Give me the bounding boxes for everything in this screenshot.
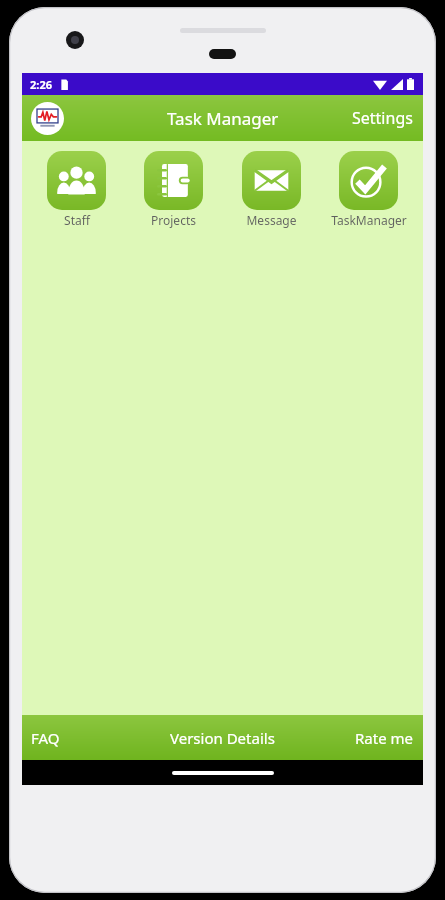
button[interactable]: TaskManager (321, 151, 416, 228)
button[interactable]: Projects (126, 151, 221, 228)
staticText: Message (246, 212, 297, 228)
button[interactable]: Message (224, 151, 319, 228)
staticText: Task Manager (167, 107, 279, 130)
staticText: Version Details (170, 728, 275, 748)
staticText: Settings (352, 107, 413, 129)
button[interactable]: FAQ (22, 715, 69, 760)
button[interactable]: Settings (342, 95, 423, 141)
staticText: 2:26 (30, 77, 52, 92)
button[interactable]: Version Details (158, 715, 287, 760)
button[interactable]: Rate me (346, 715, 423, 760)
staticText: Rate me (355, 728, 414, 748)
staticText: TaskManager (331, 212, 407, 228)
staticText: Projects (151, 212, 196, 228)
staticText: Staff (64, 212, 90, 228)
button[interactable]: Task Manager app logo (31, 102, 64, 135)
staticText: FAQ (31, 728, 60, 748)
button[interactable]: Staff (29, 151, 124, 228)
